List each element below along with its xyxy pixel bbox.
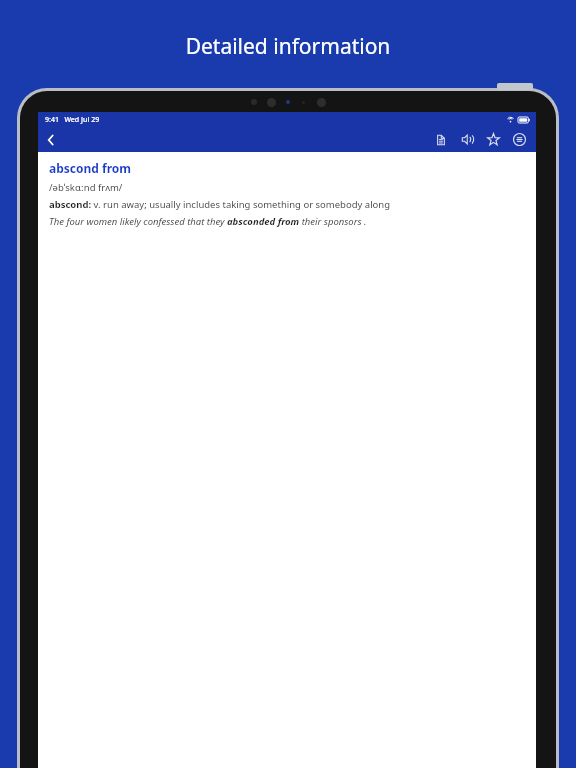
- button[interactable]: Back: [38, 127, 64, 152]
- button[interactable]: Favourite: [480, 127, 506, 152]
- staticText: Detailed information: [0, 32, 576, 61]
- staticText: abscond: v. run away; usually includes t…: [49, 198, 391, 211]
- staticText: The four women likely confessed that the…: [49, 215, 367, 228]
- button[interactable]: abscond from: [49, 160, 131, 176]
- button[interactable]: More: [506, 127, 532, 152]
- button[interactable]: Pronounce: [454, 127, 480, 152]
- button[interactable]: Notes: [428, 127, 454, 152]
- staticText: /əbˈskɑːnd frʌm/: [49, 181, 123, 194]
- staticText: 9:41 Wed Jul 29: [45, 115, 100, 125]
